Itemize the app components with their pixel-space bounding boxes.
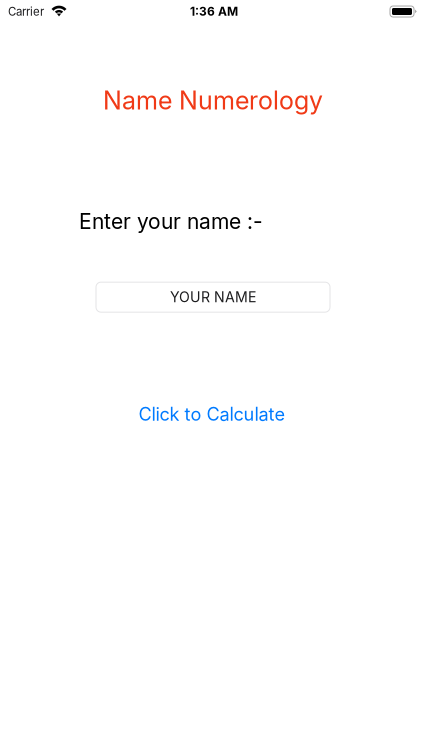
staticText: Enter your name :- [79,209,263,234]
button[interactable]: YOUR NAME [96,282,330,312]
staticText: Click to Calculate [138,403,285,425]
staticText: Carrier [8,5,44,18]
staticText: 1:36 AM [190,4,238,19]
staticText: YOUR NAME [170,289,256,306]
button[interactable]: Click to Calculate [138,403,285,425]
staticText: Name Numerology [103,85,323,116]
